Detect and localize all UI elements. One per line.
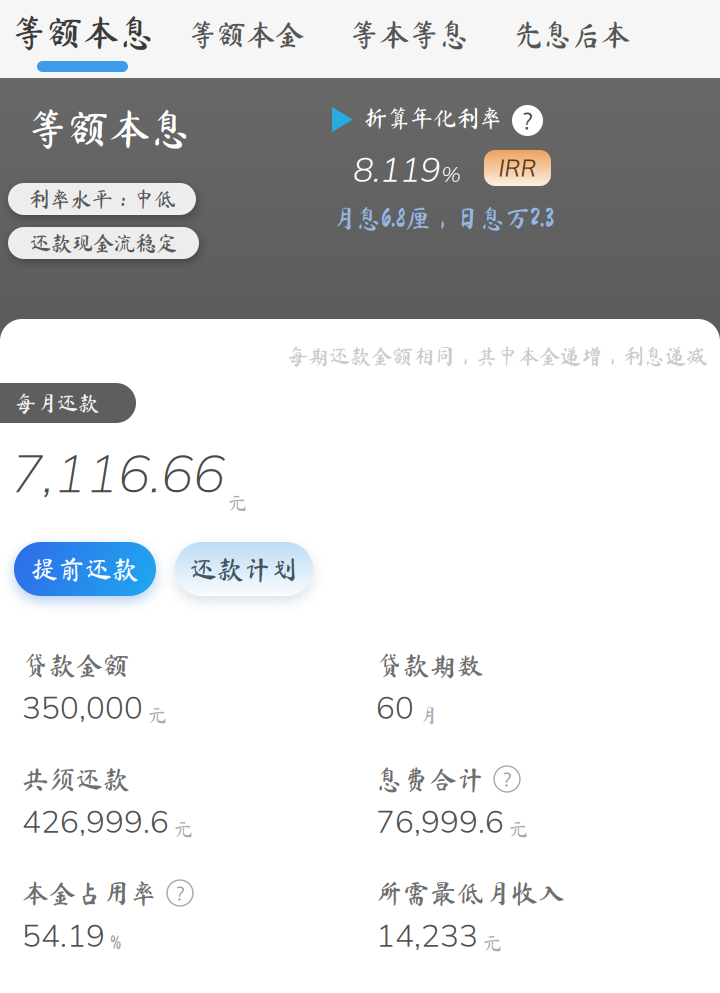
button[interactable]: 等额本金	[166, 2, 326, 66]
staticText: 所需最低月收入	[376, 880, 565, 906]
staticText: 还款现金流稳定	[30, 232, 177, 254]
staticText: 等本等息	[349, 19, 469, 49]
button[interactable]: 提前还款	[14, 542, 156, 596]
staticText: 贷款金额	[22, 652, 130, 678]
staticText: 元	[174, 820, 193, 839]
staticText: 还款计划	[190, 556, 298, 582]
button[interactable]: 先息后本	[492, 2, 652, 66]
staticText: 350,000	[22, 687, 143, 727]
staticText: 共须还款	[22, 766, 130, 792]
staticText: 76,999.6	[376, 801, 504, 841]
staticText: 每期还款金额相同，其中本金递增，利息递减	[287, 345, 707, 367]
button[interactable]: 等本等息	[329, 2, 489, 66]
staticText: 元	[509, 820, 528, 839]
staticText: 先息后本	[514, 19, 630, 49]
staticText: 元	[148, 706, 167, 725]
staticText: 等额本金	[188, 19, 304, 49]
button[interactable]: 本金占用率说明	[167, 880, 193, 906]
staticText: 8.119	[353, 148, 440, 190]
staticText: 元	[228, 494, 247, 512]
staticText: 月	[419, 706, 438, 725]
staticText: 等额本息	[11, 14, 155, 50]
staticText: 426,999.6	[22, 801, 169, 841]
staticText: 贷款期数	[376, 652, 484, 678]
staticText: 54.19	[22, 915, 105, 955]
staticText: 提前还款	[31, 556, 139, 582]
staticText: 等额本息	[27, 107, 191, 149]
staticText: IRR	[498, 154, 536, 182]
staticText: 14,233	[376, 915, 478, 955]
staticText: 元	[483, 934, 502, 953]
button[interactable]: 折算年化利率说明	[512, 105, 543, 136]
button[interactable]: 还款计划	[175, 542, 313, 596]
staticText: 本金占用率	[22, 880, 157, 906]
staticText: 每月还款	[15, 392, 99, 414]
button[interactable]: 息费合计说明	[494, 766, 520, 792]
staticText: %	[110, 934, 121, 953]
staticText: ?	[175, 880, 184, 906]
staticText: 月息6.8厘，日息万2.3	[331, 205, 554, 231]
staticText: 60	[376, 687, 414, 727]
button[interactable]: 等额本息	[3, 0, 163, 64]
staticText: 7,116.66	[11, 438, 225, 506]
staticText: 息费合计	[376, 766, 484, 792]
staticText: %	[441, 161, 461, 187]
staticText: 利率水平：中低	[28, 188, 175, 210]
staticText: ?	[502, 766, 511, 792]
staticText: 折算年化利率	[364, 106, 502, 130]
staticText: ?	[522, 105, 533, 136]
